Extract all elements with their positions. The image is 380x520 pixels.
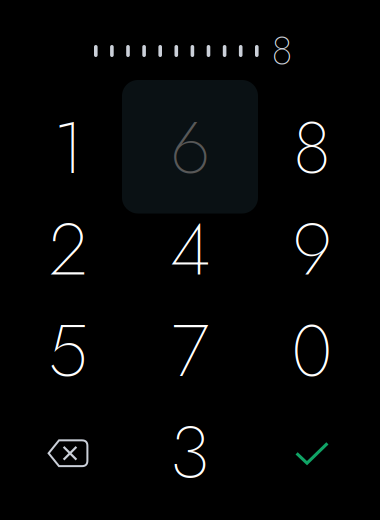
staticText: 5 bbox=[48, 299, 88, 403]
staticText: 1 bbox=[53, 96, 83, 200]
staticText: 0 bbox=[291, 299, 332, 403]
staticText: 4 bbox=[170, 197, 210, 301]
button[interactable]: 3 bbox=[129, 411, 251, 512]
staticText: 3 bbox=[170, 400, 210, 504]
staticText: 8 bbox=[293, 96, 331, 200]
staticText: 6 bbox=[170, 96, 209, 200]
button[interactable]: 6 bbox=[129, 106, 251, 208]
button[interactable]: 8 bbox=[251, 106, 373, 208]
staticText: 7 bbox=[171, 299, 208, 403]
button[interactable]: Confirm bbox=[251, 411, 373, 512]
staticText: 2 bbox=[49, 197, 87, 301]
button[interactable]: 1 bbox=[7, 106, 129, 208]
button[interactable]: Delete bbox=[7, 411, 129, 512]
button[interactable]: 0 bbox=[251, 309, 373, 411]
button[interactable]: 4 bbox=[129, 208, 251, 309]
button[interactable]: 2 bbox=[7, 208, 129, 309]
staticText: 9 bbox=[292, 197, 331, 301]
staticText: 8 bbox=[272, 22, 293, 79]
button[interactable]: 5 bbox=[7, 309, 129, 411]
button[interactable]: 9 bbox=[251, 208, 373, 309]
button[interactable]: 7 bbox=[129, 309, 251, 411]
